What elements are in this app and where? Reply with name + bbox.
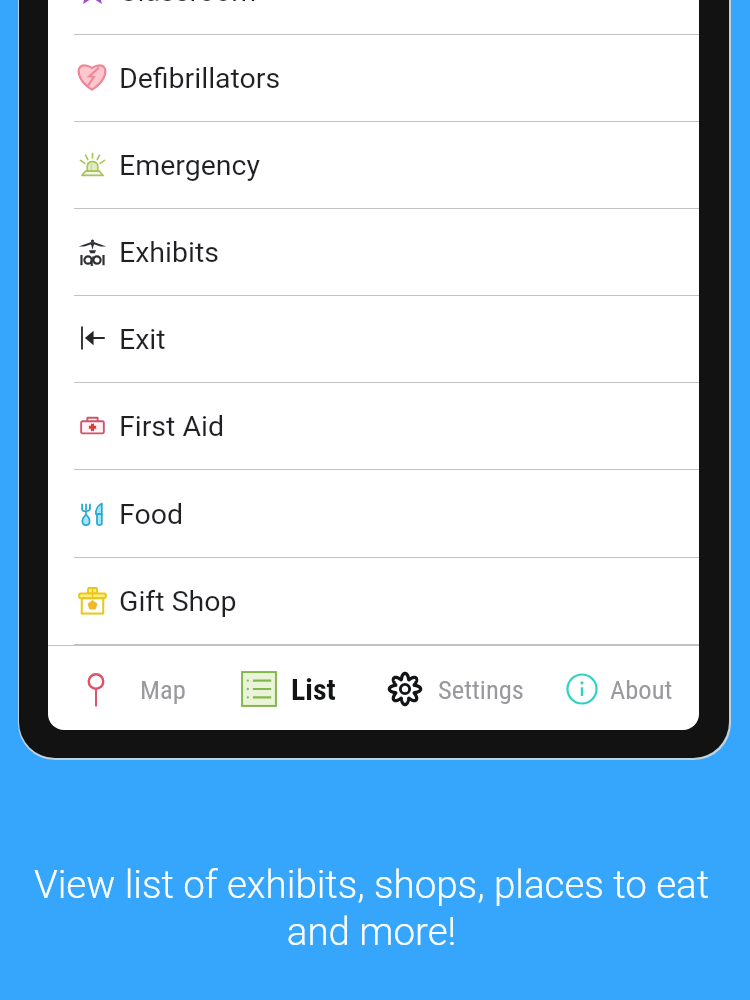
staticText: View list of exhibits, shops, places to … xyxy=(19,862,724,955)
button[interactable]: About xyxy=(560,646,682,730)
staticText: Map xyxy=(140,674,186,705)
button[interactable]: Food xyxy=(48,471,699,558)
button[interactable]: Gift Shop xyxy=(48,558,699,645)
staticText: First Aid xyxy=(119,410,225,443)
staticText: Food xyxy=(119,498,184,531)
staticText: Classroom xyxy=(119,0,257,8)
button[interactable]: Settings xyxy=(383,646,535,730)
button[interactable]: First Aid xyxy=(48,383,699,470)
staticText: Exit xyxy=(119,323,166,356)
button[interactable]: Emergency xyxy=(48,122,699,209)
button[interactable]: Exit xyxy=(48,296,699,383)
staticText: Defibrillators xyxy=(119,62,281,95)
staticText: Emergency xyxy=(119,149,260,182)
button[interactable]: Map xyxy=(74,646,188,730)
staticText: Exhibits xyxy=(119,236,219,269)
button[interactable]: List xyxy=(237,646,346,730)
button[interactable]: Exhibits xyxy=(48,209,699,296)
staticText: About xyxy=(610,674,673,705)
staticText: Gift Shop xyxy=(119,585,237,618)
staticText: Settings xyxy=(438,674,524,705)
staticText: List xyxy=(291,672,336,707)
button[interactable]: Defibrillators xyxy=(48,35,699,122)
button[interactable]: Classroom xyxy=(48,0,699,35)
